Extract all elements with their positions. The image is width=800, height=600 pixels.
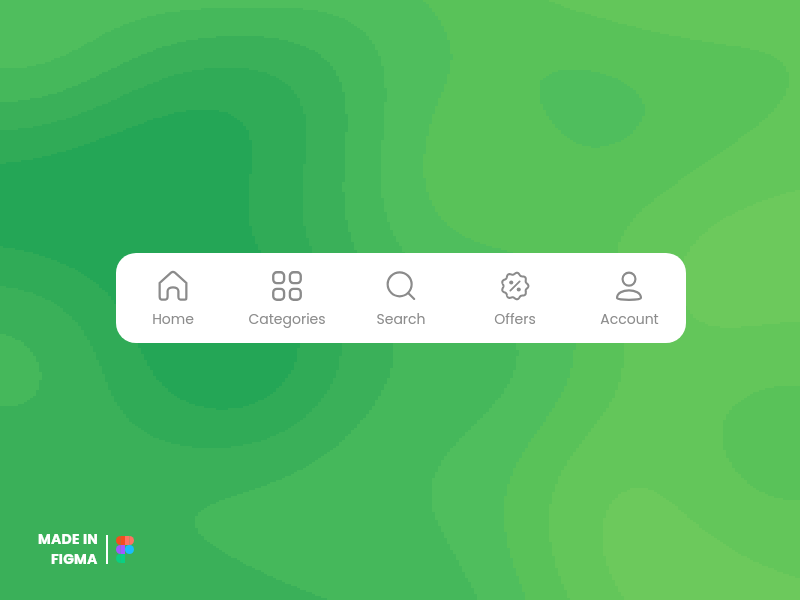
- button[interactable]: Account: [572, 253, 686, 343]
- button[interactable]: Search: [344, 253, 458, 343]
- staticText: Offers: [494, 309, 536, 329]
- button[interactable]: Categories: [230, 253, 344, 343]
- button[interactable]: Home: [116, 253, 230, 343]
- staticText: FIGMA: [51, 549, 98, 569]
- staticText: Account: [600, 309, 659, 329]
- button[interactable]: Offers: [458, 253, 572, 343]
- staticText: Search: [376, 309, 426, 329]
- staticText: MADE IN: [38, 529, 98, 549]
- staticText: Categories: [248, 309, 326, 329]
- staticText: Home: [152, 309, 194, 329]
